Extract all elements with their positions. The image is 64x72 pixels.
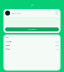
staticText: 3.50 <box>56 48 59 50</box>
staticText: Top up <box>5 45 10 46</box>
staticText: Main account <box>12 12 21 14</box>
staticText: Activity <box>5 36 9 38</box>
staticText: Send money <box>27 28 36 30</box>
staticText: 40.00 <box>55 45 59 46</box>
staticText: 12.00 <box>55 41 59 43</box>
staticText: Coffee <box>5 48 10 50</box>
staticText: Transfer <box>5 41 12 43</box>
staticText: Wallet <box>30 4 33 6</box>
